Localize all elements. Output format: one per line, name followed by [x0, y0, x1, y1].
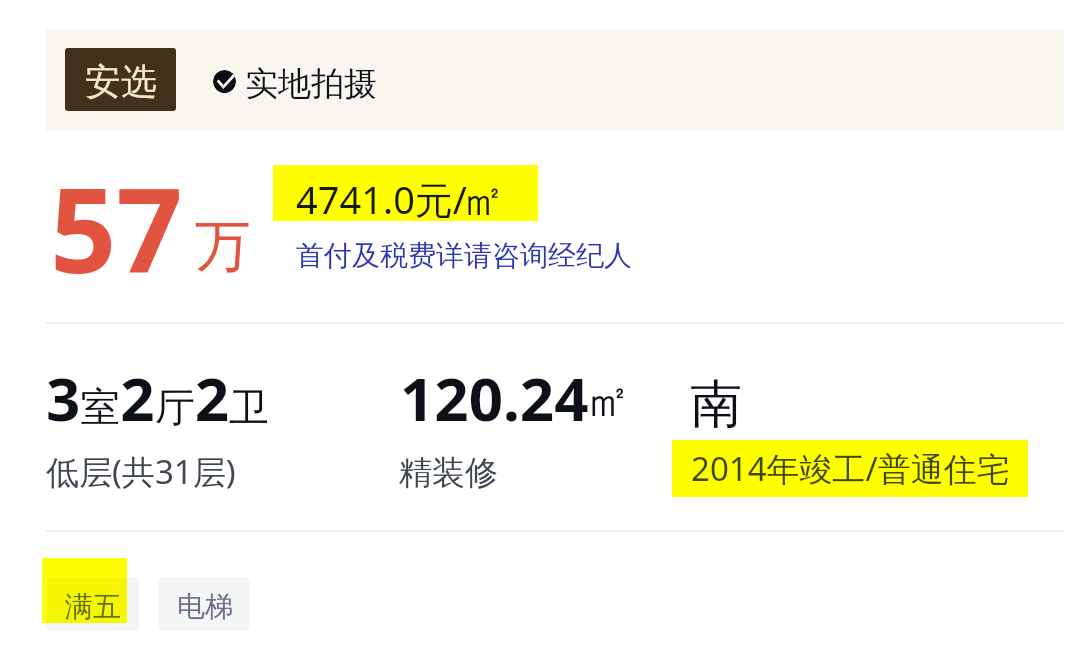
staticText: 实地拍摄 — [245, 63, 377, 105]
button[interactable]: 满五 — [46, 578, 139, 631]
staticText: 120.24 — [400, 357, 589, 439]
staticText: 首付及税费详请咨询经纪人 — [296, 238, 632, 273]
staticText: 3室2厅2卫 — [46, 357, 269, 439]
staticText: 4741.0元/ — [296, 173, 468, 225]
staticText: 万 — [195, 211, 251, 282]
other: Verified field photo — [213, 70, 236, 93]
staticText: 57 — [50, 149, 183, 307]
staticText: 精装修 — [399, 452, 498, 494]
staticText: ㎡ — [585, 372, 631, 430]
staticText: 满五 — [65, 589, 121, 624]
button[interactable]: 电梯 — [158, 578, 250, 631]
staticText: 低层(共31层) — [46, 449, 236, 494]
button[interactable]: 首付及税费详请咨询经纪人 — [296, 238, 632, 273]
staticText: ㎡ — [461, 173, 505, 228]
staticText: 电梯 — [177, 589, 233, 624]
staticText: 2014年竣工/普通住宅 — [691, 446, 1010, 491]
staticText: 安选 — [85, 59, 157, 104]
button[interactable]: 安选 — [46, 29, 1064, 131]
staticText: 南 — [690, 372, 742, 438]
